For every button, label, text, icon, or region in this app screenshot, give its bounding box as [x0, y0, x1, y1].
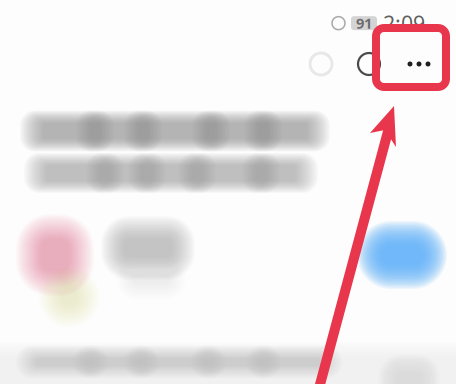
staticText: 91: [356, 13, 372, 33]
button[interactable]: More options: [391, 40, 447, 88]
button[interactable]: Search: [349, 42, 389, 86]
staticText: 2:09: [383, 9, 425, 37]
